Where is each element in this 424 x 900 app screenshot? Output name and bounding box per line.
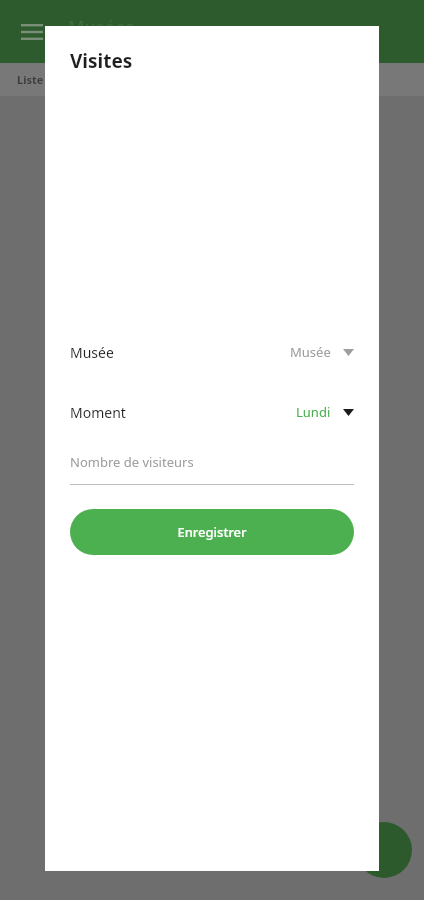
staticText: Musées bbox=[68, 15, 134, 40]
button[interactable]: Add visit bbox=[356, 822, 412, 878]
button[interactable]: Enregistrer bbox=[70, 509, 354, 555]
staticText: Musée bbox=[290, 343, 331, 361]
staticText: Enregistrer bbox=[177, 523, 247, 541]
button[interactable]: Liste bbox=[0, 63, 60, 96]
staticText: Visites bbox=[70, 48, 133, 74]
staticText: Liste bbox=[17, 72, 44, 87]
button[interactable]: Moment bbox=[45, 398, 379, 426]
staticText: Musée bbox=[70, 343, 114, 362]
button[interactable]: Musée bbox=[45, 338, 379, 366]
staticText: Nombre de visiteurs bbox=[70, 453, 194, 471]
button[interactable]: Nombre de visiteurs bbox=[70, 453, 354, 485]
staticText: Lundi bbox=[296, 403, 331, 421]
button[interactable]: Open navigation menu bbox=[10, 10, 54, 54]
staticText: Moment bbox=[70, 403, 126, 422]
